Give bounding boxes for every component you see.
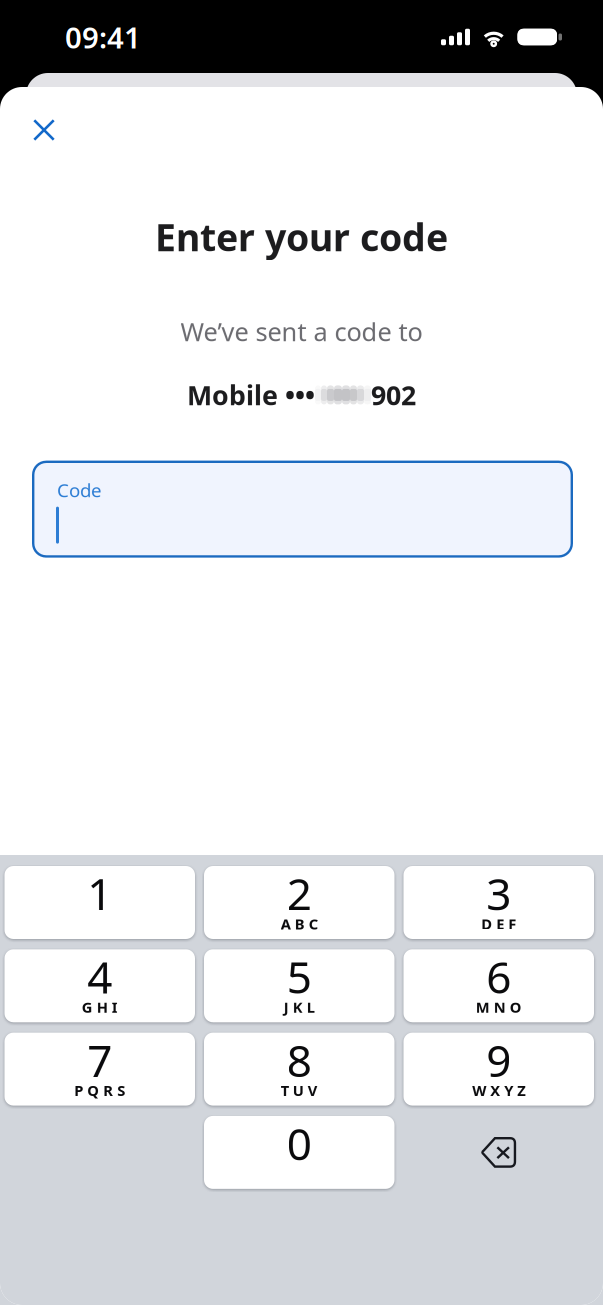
button[interactable]: 0 bbox=[204, 1116, 394, 1189]
staticText: 2 bbox=[287, 864, 312, 922]
staticText: D E F bbox=[481, 914, 516, 933]
staticText: A B C bbox=[281, 914, 318, 933]
staticText: M N O bbox=[476, 997, 522, 1017]
staticText: We’ve sent a code to bbox=[180, 315, 422, 348]
button[interactable]: 4 bbox=[4, 949, 195, 1022]
button[interactable]: 6 bbox=[403, 949, 594, 1022]
staticText: 6 bbox=[486, 947, 511, 1006]
staticText: T U V bbox=[281, 1081, 318, 1100]
button[interactable]: Close bbox=[21, 107, 67, 153]
button[interactable]: 1 bbox=[4, 866, 195, 939]
staticText: P Q R S bbox=[74, 1081, 125, 1100]
staticText: 8 bbox=[287, 1031, 312, 1089]
staticText: 3 bbox=[486, 864, 511, 922]
staticText: 9 bbox=[486, 1031, 511, 1089]
staticText: 09:41 bbox=[65, 17, 141, 56]
staticText: 7 bbox=[87, 1031, 112, 1089]
staticText: 1 bbox=[87, 864, 112, 922]
button[interactable]: 9 bbox=[403, 1033, 594, 1106]
staticText: W X Y Z bbox=[472, 1081, 525, 1100]
staticText: Code bbox=[57, 478, 102, 502]
staticText: J K L bbox=[284, 997, 315, 1017]
staticText: Mobile ••• bbox=[187, 377, 315, 413]
staticText: 902 bbox=[371, 377, 416, 413]
staticText: G H I bbox=[82, 997, 118, 1017]
button[interactable]: 5 bbox=[204, 949, 394, 1022]
button[interactable]: 7 bbox=[4, 1033, 195, 1106]
button[interactable]: 2 bbox=[204, 866, 394, 939]
staticText: 5 bbox=[287, 947, 312, 1006]
staticText: 0 bbox=[287, 1114, 312, 1172]
button[interactable]: Delete bbox=[403, 1116, 594, 1189]
staticText: Enter your code bbox=[155, 212, 448, 262]
staticText: 4 bbox=[87, 947, 112, 1006]
button[interactable]: 8 bbox=[204, 1033, 394, 1106]
button[interactable]: 3 bbox=[403, 866, 594, 939]
